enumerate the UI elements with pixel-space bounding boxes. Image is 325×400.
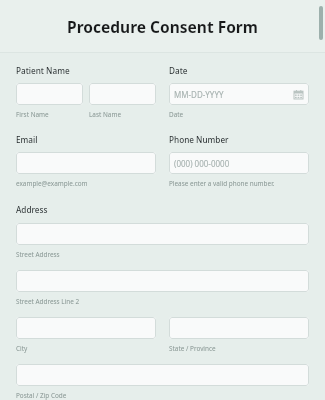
staticText: MM-DD-YYYY [174,89,293,100]
other: Scroll position [319,6,323,40]
staticText: Patient Name [16,65,70,76]
button[interactable] [16,152,156,174]
button[interactable]: MM-DD-YYYY [169,83,309,105]
button[interactable] [16,83,83,105]
button[interactable] [16,317,156,339]
staticText: Street Address Line 2 [16,297,80,306]
staticText: Date [169,110,184,119]
staticText: Please enter a valid phone number. [169,179,275,188]
button[interactable] [89,83,156,105]
staticText: Street Address [16,250,60,259]
staticText: example@example.com [16,179,88,188]
staticText: Email [16,134,38,145]
staticText: Phone Number [169,134,229,145]
button[interactable] [16,364,309,386]
staticText: First Name [16,110,49,119]
staticText: State / Province [169,344,216,353]
staticText: Address [16,204,48,215]
staticText: (000) 000-0000 [174,158,304,169]
button[interactable]: Open date picker [293,89,304,100]
button[interactable] [16,270,309,292]
button[interactable] [169,317,309,339]
staticText: Last Name [89,110,121,119]
staticText: Date [169,65,188,76]
staticText: Procedure Consent Form [67,16,258,37]
staticText: City [16,344,28,353]
button[interactable] [16,223,309,245]
staticText: Postal / Zip Code [16,391,67,400]
button[interactable]: (000) 000-0000 [169,152,309,174]
